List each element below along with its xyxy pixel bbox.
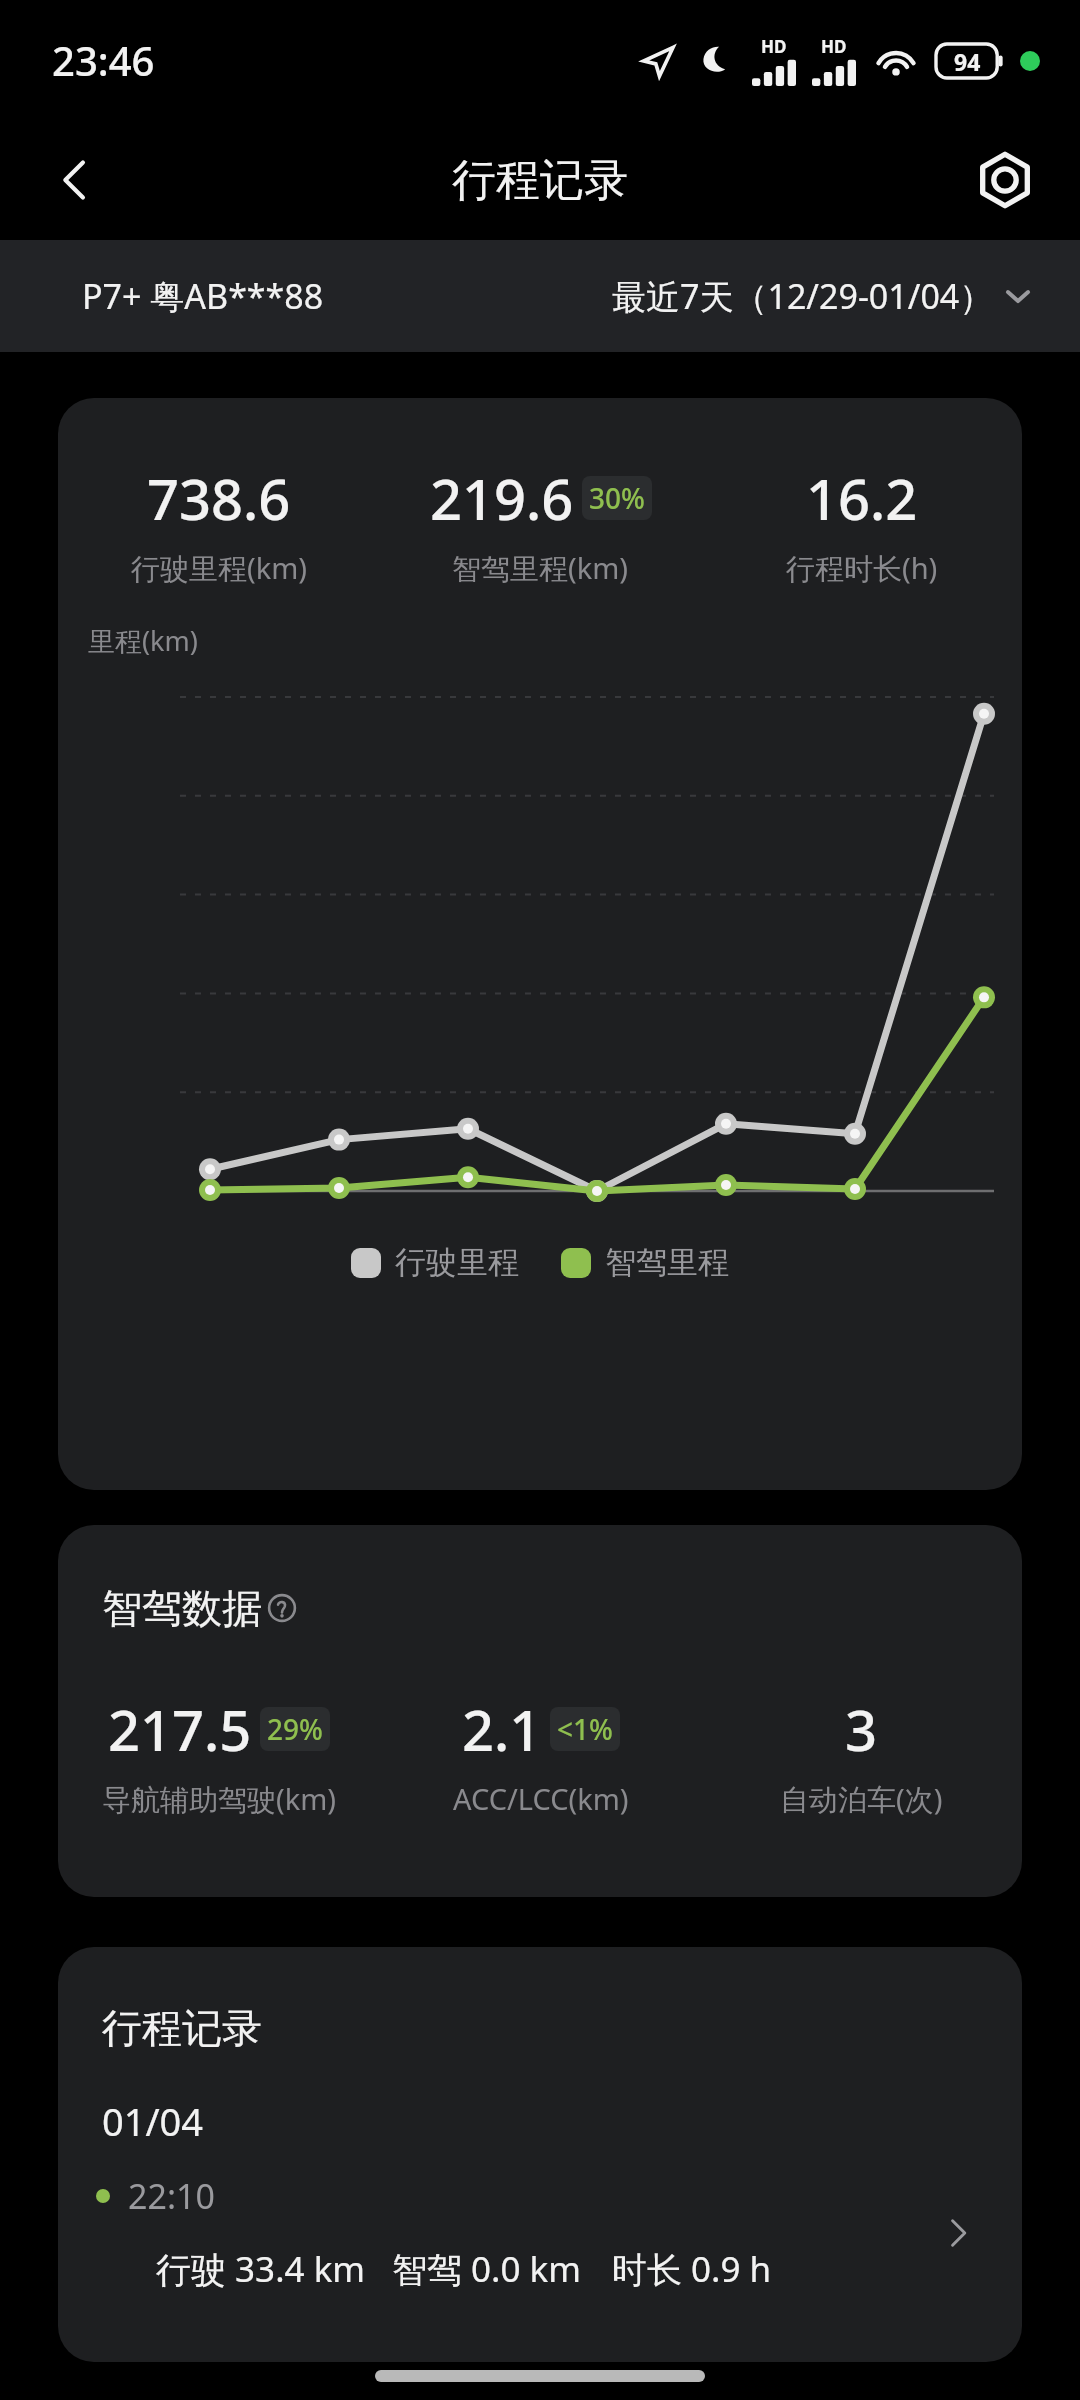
staticText: 行程记录: [452, 153, 628, 208]
button[interactable]: 22:10: [58, 2173, 1022, 2293]
staticText: 94: [954, 46, 981, 77]
staticText: 行驶里程: [395, 1243, 519, 1282]
staticText: <1%: [557, 1710, 613, 1748]
staticText: 时长 0.9 h: [612, 2245, 772, 2293]
button[interactable]: Back: [30, 135, 120, 225]
staticText: 16.2: [806, 460, 918, 536]
staticText: P7+ 粤AB***88: [82, 273, 324, 319]
staticText: 里程(km): [88, 622, 198, 659]
staticText: 行程时长(h): [786, 548, 938, 588]
staticText: 22:10: [128, 2173, 215, 2219]
staticText: 导航辅助驾驶(km): [102, 1779, 337, 1819]
staticText: 行驶 33.4 km: [156, 2245, 366, 2293]
button[interactable]: Settings: [960, 135, 1050, 225]
staticText: 738.6: [147, 460, 291, 536]
staticText: 30%: [589, 479, 645, 517]
staticText: 最近7天（12/29-01/04）: [612, 273, 994, 319]
other: Help: [268, 1594, 296, 1622]
staticText: 智驾 0.0 km: [392, 2245, 582, 2293]
staticText: HD: [761, 35, 787, 58]
staticText: 219.6: [430, 460, 574, 536]
staticText: 自动泊车(次): [780, 1779, 943, 1819]
button[interactable]: 最近7天（12/29-01/04）: [612, 273, 1032, 319]
staticText: 智驾里程(km): [452, 548, 629, 588]
staticText: 3: [845, 1691, 878, 1767]
staticText: ACC/LCC(km): [453, 1779, 629, 1818]
staticText: 29%: [267, 1710, 323, 1748]
button[interactable]: P7+ 粤AB***88: [82, 273, 324, 319]
staticText: 行驶里程(km): [131, 548, 308, 588]
staticText: HD: [821, 35, 847, 58]
staticText: 217.5: [108, 1691, 252, 1767]
staticText: 2.1: [462, 1691, 542, 1767]
button[interactable]: 智驾数据: [102, 1583, 296, 1633]
staticText: 行程记录: [102, 2003, 262, 2053]
staticText: 01/04: [102, 2095, 204, 2147]
staticText: 23:46: [52, 33, 155, 87]
staticText: 智驾里程: [605, 1243, 729, 1282]
staticText: 智驾数据: [102, 1583, 262, 1633]
